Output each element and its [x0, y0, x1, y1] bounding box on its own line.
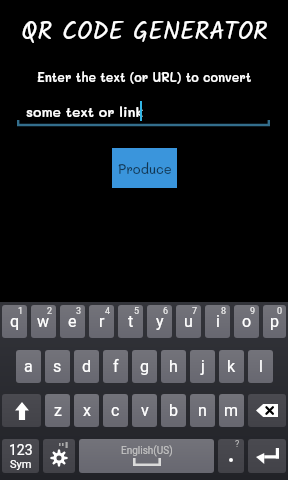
staticText: English(US) [121, 445, 173, 457]
staticText: 123 [9, 442, 33, 458]
staticText: k [227, 357, 236, 376]
button[interactable]: m [219, 394, 244, 427]
button[interactable]: v [132, 394, 157, 427]
staticText: 3 [76, 306, 82, 317]
staticText: 1 [18, 306, 24, 317]
button[interactable]: n [190, 394, 215, 427]
button[interactable]: x [74, 394, 99, 427]
staticText: a [24, 357, 33, 376]
button[interactable]: i [205, 305, 230, 338]
button[interactable]: p [263, 305, 286, 338]
staticText: c [111, 401, 120, 420]
button[interactable]: e [60, 305, 85, 338]
staticText: Produce [118, 160, 172, 177]
staticText: Enter the text (or URL) to convert [37, 69, 252, 85]
staticText: 5 [134, 306, 140, 317]
button[interactable]: b [161, 394, 186, 427]
button[interactable]: c [103, 394, 128, 427]
staticText: f [113, 357, 119, 376]
button[interactable]: Period [218, 439, 244, 473]
staticText: 9 [250, 306, 256, 317]
staticText: e [68, 312, 77, 331]
button[interactable]: s [45, 350, 70, 383]
staticText: g [140, 357, 149, 376]
staticText: r [99, 312, 105, 331]
staticText: 4 [105, 306, 111, 317]
staticText: y [156, 312, 164, 331]
button[interactable]: k [219, 350, 244, 383]
button[interactable]: d [74, 350, 99, 383]
staticText: w [37, 312, 50, 331]
staticText: m [224, 401, 239, 420]
staticText: u [184, 312, 193, 331]
button[interactable]: Symbols [2, 439, 39, 473]
staticText: QR CODE GENERATOR [21, 12, 268, 52]
button[interactable]: j [190, 350, 215, 383]
staticText: 0 [277, 306, 283, 317]
staticText: 8 [221, 306, 227, 317]
button[interactable]: Space [79, 439, 214, 473]
button[interactable]: g [132, 350, 157, 383]
button[interactable]: Shift [2, 394, 41, 427]
button[interactable]: q [2, 305, 27, 338]
staticText: 7 [192, 306, 198, 317]
staticText: x [83, 401, 91, 420]
button[interactable]: l [248, 350, 273, 383]
staticText: l [259, 357, 263, 376]
staticText: p [270, 312, 279, 331]
button[interactable]: Settings [43, 439, 75, 473]
staticText: v [141, 401, 149, 420]
staticText: b [169, 401, 178, 420]
staticText: ? [235, 439, 240, 450]
button[interactable]: h [161, 350, 186, 383]
button[interactable]: u [176, 305, 201, 338]
button[interactable]: Enter [248, 439, 286, 473]
button[interactable]: w [31, 305, 56, 338]
button[interactable]: o [234, 305, 259, 338]
button[interactable]: a [16, 350, 41, 383]
staticText: s [53, 357, 62, 376]
button[interactable]: f [103, 350, 128, 383]
button[interactable]: Produce [112, 148, 177, 188]
staticText: 6 [163, 306, 169, 317]
staticText: Sym [10, 458, 32, 471]
button[interactable]: Backspace [248, 394, 286, 427]
button[interactable]: y [147, 305, 172, 338]
staticText: j [201, 357, 205, 376]
staticText: 2 [47, 306, 53, 317]
staticText: z [54, 401, 62, 420]
button[interactable]: r [89, 305, 114, 338]
button[interactable]: t [118, 305, 143, 338]
staticText: some text or link [26, 102, 144, 120]
staticText: o [242, 312, 252, 331]
staticText: n [198, 401, 207, 420]
staticText: t [128, 312, 134, 331]
staticText: h [169, 357, 178, 376]
button[interactable]: z [45, 394, 70, 427]
staticText: i [216, 312, 220, 331]
staticText: d [82, 357, 92, 376]
staticText: q [10, 312, 20, 331]
